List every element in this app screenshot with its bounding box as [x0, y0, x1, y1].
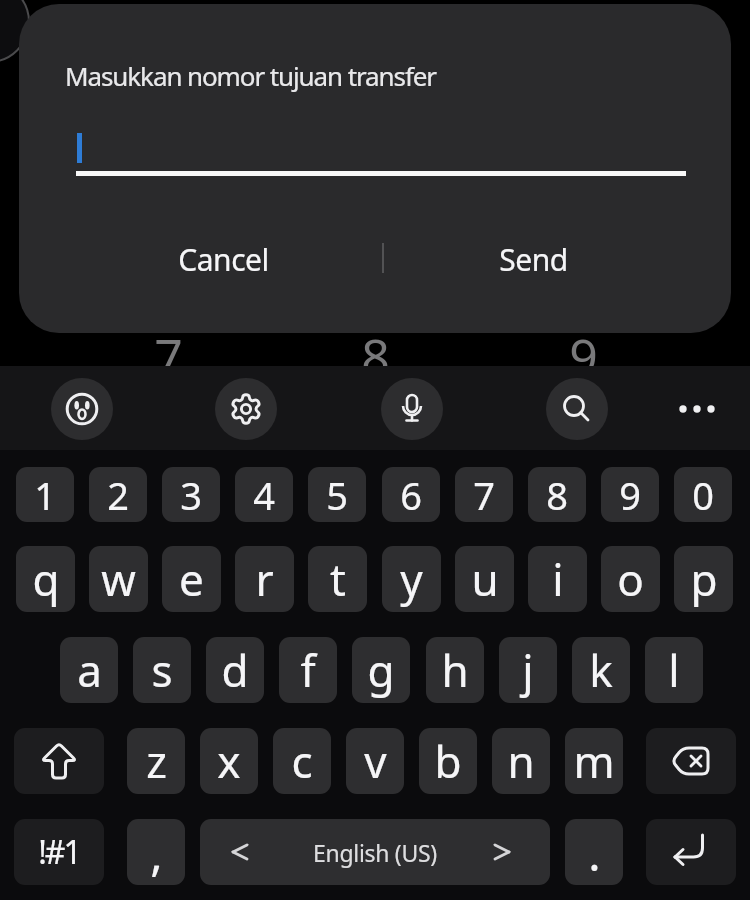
button[interactable] [65, 115, 685, 177]
staticText: !#1 [38, 830, 80, 874]
button[interactable]: o [601, 546, 660, 612]
button[interactable] [51, 378, 113, 440]
staticText: 8 [546, 469, 568, 521]
staticText: s [151, 640, 173, 700]
staticText: j [522, 640, 534, 700]
staticText: w [101, 549, 136, 609]
button[interactable]: z [127, 728, 185, 794]
staticText: x [217, 731, 241, 791]
button[interactable] [646, 728, 736, 794]
button[interactable]: f [279, 637, 337, 703]
button[interactable] [215, 378, 277, 440]
button[interactable] [14, 728, 104, 794]
button[interactable]: l [645, 637, 703, 703]
button[interactable]: 2 [89, 467, 147, 522]
staticText: 9 [619, 469, 641, 521]
staticText: u [471, 549, 499, 609]
button[interactable]: s [133, 637, 191, 703]
staticText: Cancel [178, 239, 269, 280]
button[interactable]: j [499, 637, 557, 703]
button[interactable]: p [674, 546, 733, 612]
button[interactable]: x [200, 728, 258, 794]
staticText: k [589, 640, 613, 700]
button[interactable] [646, 819, 736, 885]
staticText: b [434, 731, 462, 791]
staticText: a [77, 640, 102, 700]
button[interactable]: , [127, 819, 185, 885]
button[interactable] [546, 378, 608, 440]
staticText: y [400, 549, 423, 609]
button[interactable]: i [528, 546, 587, 612]
button[interactable]: 5 [308, 467, 366, 522]
button[interactable] [381, 378, 443, 440]
button[interactable]: . [565, 819, 623, 885]
staticText: 3 [180, 469, 202, 521]
button[interactable]: 7 [455, 467, 513, 522]
button[interactable]: n [492, 728, 550, 794]
staticText: m [573, 731, 615, 791]
staticText: g [367, 640, 395, 700]
button[interactable] [673, 391, 721, 427]
button[interactable]: a [60, 637, 118, 703]
button[interactable]: b [419, 728, 477, 794]
button[interactable]: Send [433, 235, 633, 283]
button[interactable]: 1 [16, 467, 74, 522]
staticText: 2 [107, 469, 129, 521]
staticText: o [617, 549, 644, 609]
staticText: English (US) [313, 837, 437, 868]
staticText: Send [499, 239, 568, 280]
button[interactable]: g [352, 637, 410, 703]
staticText: 1 [34, 469, 56, 521]
staticText: 9 [569, 322, 598, 382]
button[interactable]: 0 [674, 467, 732, 522]
button[interactable]: u [455, 546, 514, 612]
button[interactable]: 4 [235, 467, 293, 522]
staticText: d [221, 640, 249, 700]
button[interactable]: !#1 [14, 819, 104, 885]
staticText: f [300, 640, 316, 700]
button[interactable]: h [426, 637, 484, 703]
staticText: 0 [692, 469, 714, 521]
staticText: e [179, 549, 204, 609]
button[interactable]: c [273, 728, 331, 794]
button[interactable]: English (US) [200, 819, 550, 885]
staticText: 7 [154, 322, 183, 382]
button[interactable]: Cancel [123, 235, 323, 283]
button[interactable]: y [382, 546, 441, 612]
staticText: t [330, 549, 346, 609]
button[interactable]: k [572, 637, 630, 703]
staticText: 4 [253, 469, 275, 521]
staticText: n [507, 731, 535, 791]
staticText: c [291, 731, 313, 791]
button[interactable]: r [235, 546, 294, 612]
button[interactable]: v [346, 728, 404, 794]
staticText: r [255, 549, 274, 609]
staticText: 8 [361, 322, 390, 382]
staticText: v [364, 731, 387, 791]
staticText: . [588, 822, 601, 885]
staticText: i [552, 549, 564, 609]
staticText: Masukkan nomor tujuan transfer [65, 58, 436, 93]
button[interactable]: t [308, 546, 367, 612]
button[interactable]: w [89, 546, 148, 612]
button[interactable]: q [16, 546, 75, 612]
button[interactable]: 9 [601, 467, 659, 522]
staticText: 5 [326, 469, 348, 521]
button[interactable]: m [565, 728, 623, 794]
staticText: 7 [473, 469, 495, 521]
button[interactable]: e [162, 546, 221, 612]
staticText: h [441, 640, 469, 700]
button[interactable]: d [206, 637, 264, 703]
staticText: l [668, 640, 680, 700]
staticText: q [32, 549, 60, 609]
button[interactable]: 8 [528, 467, 586, 522]
button[interactable]: 6 [382, 467, 440, 522]
staticText: , [150, 822, 163, 885]
staticText: z [146, 731, 167, 791]
staticText: 6 [400, 469, 422, 521]
button[interactable]: 3 [162, 467, 220, 522]
staticText: p [690, 549, 718, 609]
